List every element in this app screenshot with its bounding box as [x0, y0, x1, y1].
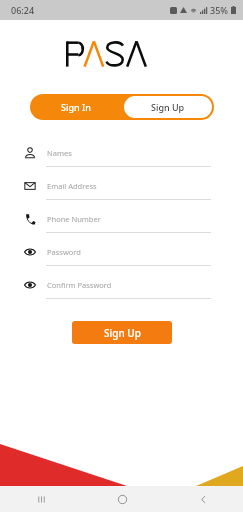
button[interactable]: Sign Up: [124, 96, 212, 118]
button[interactable]: Back: [186, 486, 220, 512]
button[interactable]: Name: [14, 146, 229, 179]
button[interactable]: Email: [14, 179, 229, 212]
other: Email: [24, 180, 36, 192]
button[interactable]: Phone: [14, 212, 229, 245]
staticText: Sign In: [61, 101, 91, 113]
other: Name: [24, 147, 36, 159]
other: Toggle password visibility: [24, 279, 36, 291]
button[interactable]: Sign Up: [72, 321, 172, 344]
staticText: 35%: [210, 4, 228, 16]
staticText: Confirm Password: [47, 280, 112, 290]
staticText: Sign Up: [104, 326, 141, 340]
staticText: Email Address: [47, 181, 97, 191]
staticText: Names: [47, 148, 72, 158]
button[interactable]: Recents: [24, 486, 58, 512]
other: Toggle password visibility: [24, 246, 36, 258]
button[interactable]: Toggle password visibility: [14, 278, 229, 311]
staticText: 06:24: [11, 4, 35, 16]
staticText: Phone Number: [47, 214, 101, 224]
button[interactable]: Sign In: [30, 94, 122, 120]
button[interactable]: Toggle password visibility: [14, 245, 229, 278]
other: Phone: [24, 213, 36, 225]
button[interactable]: Home: [105, 486, 139, 512]
staticText: Password: [47, 247, 81, 257]
staticText: Sign Up: [151, 101, 185, 113]
